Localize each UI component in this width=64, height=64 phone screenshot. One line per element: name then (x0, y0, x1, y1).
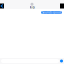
button[interactable]: Send (60, 59, 63, 62)
button[interactable]: Back (0, 3, 4, 8)
staticText: Alex (29, 6, 34, 9)
staticText: Sounds good (42, 11, 61, 14)
